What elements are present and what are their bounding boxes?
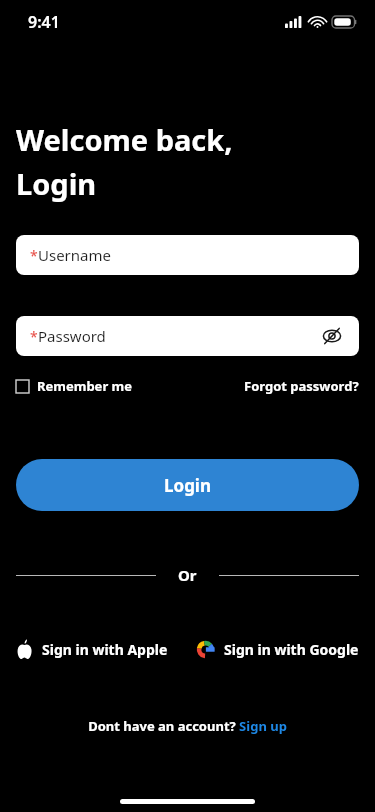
button[interactable]: Show password (319, 323, 345, 349)
staticText: Login (164, 474, 212, 497)
button[interactable]: Remember me (16, 377, 133, 395)
staticText: Remember me (37, 377, 133, 395)
staticText: * (30, 327, 38, 346)
staticText: * (30, 246, 38, 265)
button[interactable]: * (16, 235, 359, 275)
button[interactable]: Sign in with Apple (16, 639, 168, 659)
staticText: Welcome back, Login (16, 120, 233, 203)
staticText: Username (38, 245, 111, 265)
staticText: Sign in with Google (224, 640, 359, 659)
staticText: 9:41 (28, 11, 60, 33)
button[interactable]: Sign in with Google (196, 640, 359, 659)
button[interactable]: * (16, 316, 359, 356)
button[interactable]: Dont have an account? Sign up (88, 717, 287, 735)
staticText: Password (38, 326, 106, 346)
staticText: Or (178, 565, 197, 585)
button[interactable]: Forgot password? (244, 377, 359, 395)
button[interactable]: Login (16, 459, 359, 511)
staticText: Sign in with Apple (42, 640, 168, 659)
